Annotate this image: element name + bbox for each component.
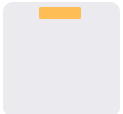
button[interactable]: Primary action (39, 7, 81, 19)
